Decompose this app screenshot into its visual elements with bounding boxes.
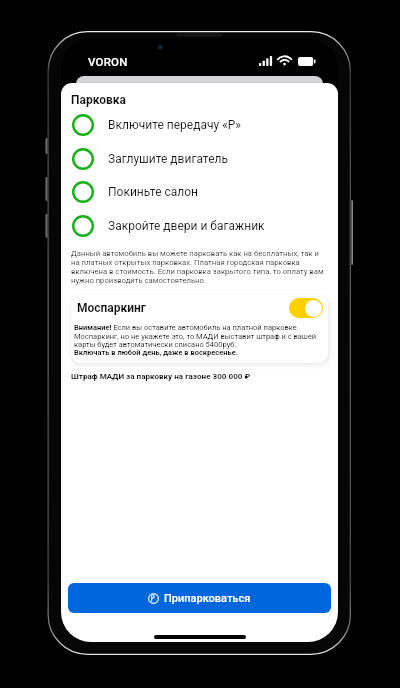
staticText: Включите передачу «P» <box>108 118 241 132</box>
staticText: Припарковаться <box>164 592 251 605</box>
button[interactable]: Припарковаться <box>68 583 331 613</box>
staticText: Покиньте салон <box>108 185 198 199</box>
staticText: Заглушите двигатель <box>108 152 228 166</box>
staticText: Данный автомобиль вы можете парковать ка… <box>71 249 327 285</box>
button[interactable]: Mosparking switch <box>289 298 323 318</box>
staticText: Внимание! Если вы оставите автомобиль на… <box>74 323 322 356</box>
staticText: Закройте двери и багажник <box>108 219 265 233</box>
button[interactable]: Заглушите двигатель <box>61 142 338 176</box>
button[interactable]: Включите передачу «P» <box>61 108 338 142</box>
staticText: VORON <box>88 55 128 68</box>
staticText: Моспаркинг <box>77 301 146 315</box>
staticText: Парковка <box>71 93 126 107</box>
staticText: Штраф МАДИ за парковку на газоне 300 000… <box>71 371 251 380</box>
button[interactable]: Покиньте салон <box>61 175 338 209</box>
button[interactable]: Закройте двери и багажник <box>61 209 338 243</box>
